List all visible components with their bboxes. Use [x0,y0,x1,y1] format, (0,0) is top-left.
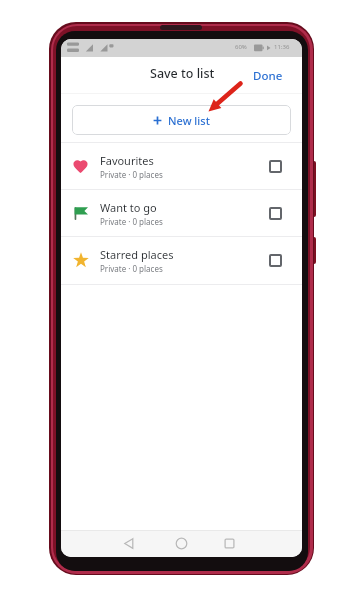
staticText: Want to go [100,200,157,215]
button[interactable] [269,254,282,267]
button[interactable]: Starred places [61,236,302,284]
staticText: Done [253,68,283,84]
staticText: Private · 0 places [100,169,163,180]
button[interactable]: Want to go [61,189,302,237]
button[interactable]: Done [249,65,287,86]
staticText: 60% [235,43,247,51]
staticText: Save to list [150,65,215,82]
staticText: New list [168,113,210,128]
button[interactable] [269,207,282,220]
staticText: Favourites [100,153,154,168]
staticText: Private · 0 places [100,216,163,227]
button[interactable]: Favourites [61,142,302,190]
staticText: Private · 0 places [100,263,163,274]
button[interactable]: New list [72,105,291,135]
staticText: 11:36 [274,43,290,51]
button[interactable] [269,160,282,173]
staticText: Starred places [100,247,174,262]
